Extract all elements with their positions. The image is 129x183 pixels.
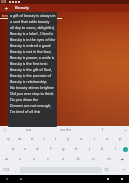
button[interactable]: c — [41, 154, 56, 164]
staticText: Beauty — [15, 5, 29, 11]
staticText: g — [62, 146, 65, 152]
staticText: Dreams are not enough; No matter what... — [10, 103, 56, 108]
button[interactable]: o — [101, 134, 114, 144]
staticText: a soul that adds beauty that sometimes..… — [10, 19, 56, 24]
button[interactable]: Beauty is the gift of God, and the most.… — [8, 66, 57, 72]
staticText: Beauty is in the eyes of the beholder — [10, 37, 56, 42]
staticText: h — [75, 146, 78, 152]
button[interactable]: r — [38, 134, 50, 144]
button[interactable]: Navigate up — [0, 4, 12, 12]
button[interactable]: Beauty is a label - I lived a legacy — [8, 30, 57, 36]
button[interactable]: e — [26, 134, 38, 144]
button[interactable]: beautiful — [0, 12, 129, 20]
staticText: Beauty is the first test: there is no pl… — [10, 61, 56, 66]
staticText: v — [62, 156, 65, 162]
button[interactable]: z — [13, 154, 27, 164]
staticText: m — [107, 156, 111, 162]
button[interactable]: p — [114, 134, 127, 144]
button[interactable]: a soul that adds beauty that sometimes..… — [8, 18, 57, 24]
staticText: I'm tired of all this nonsense about bea… — [10, 109, 56, 114]
staticText: Beauty is the gift of God, and the most.… — [10, 67, 56, 72]
button[interactable]: b — [71, 154, 86, 164]
button[interactable]: Menu — [118, 175, 126, 183]
button[interactable]: Emoji — [102, 164, 111, 175]
staticText: use the — [60, 128, 72, 132]
button[interactable]: g — [57, 144, 70, 154]
button[interactable]: m — [101, 154, 116, 164]
button[interactable]: Enter — [119, 164, 129, 175]
button[interactable]: Beauty is not in the face; beauty is a l… — [8, 48, 57, 54]
staticText: all day to come, delightful, and, wisdom… — [10, 25, 56, 30]
button[interactable]: but — [10, 126, 47, 134]
button[interactable]: q — [2, 134, 14, 144]
button[interactable]: n — [86, 154, 101, 164]
staticText: x — [33, 156, 36, 162]
button[interactable]: y — [62, 134, 75, 144]
button[interactable]: h — [70, 144, 83, 154]
staticText: but — [26, 128, 32, 132]
button[interactable]: Beauty is in the eyes of the beholder — [8, 36, 57, 42]
button[interactable]: Dreams are not enough; No matter what... — [8, 102, 57, 108]
button[interactable]: Comma — [12, 164, 20, 175]
staticText: f — [50, 146, 52, 152]
staticText: n — [92, 156, 95, 162]
staticText: No beauty shines brighter than that of a… — [10, 85, 56, 90]
staticText: w — [18, 136, 22, 142]
button[interactable]: v — [56, 154, 71, 164]
button[interactable]: k — [96, 144, 109, 154]
button[interactable]: Beauty is the promise of happiness. — [8, 72, 57, 78]
button[interactable]: Keyboard menu — [0, 126, 10, 134]
staticText: k — [101, 146, 104, 152]
button[interactable]: Beauty is relationship; there is always.… — [8, 78, 57, 84]
button[interactable]: use the — [47, 126, 84, 134]
button[interactable]: u — [75, 134, 88, 144]
button[interactable]: I — [84, 126, 121, 134]
staticText: Beauty is the promise of happiness. — [10, 73, 56, 78]
button[interactable]: Beauty is power; a smile is its sword — [8, 54, 57, 60]
button[interactable]: I'm tired of all this nonsense about bea… — [8, 108, 57, 114]
button[interactable]: Overview — [104, 175, 112, 183]
button[interactable]: Search — [122, 144, 129, 154]
button[interactable]: Symbols — [0, 164, 12, 175]
button[interactable]: all day to come, delightful, and, wisdom… — [8, 24, 57, 30]
staticText: Beauty is a label - I lived a legacy — [10, 31, 56, 36]
staticText: q — [7, 136, 10, 142]
staticText: . — [114, 167, 116, 172]
button[interactable]: No beauty shines brighter than that of a… — [8, 84, 57, 90]
button[interactable]: t — [50, 134, 62, 144]
button[interactable]: More suggestions — [121, 126, 129, 134]
staticText: j — [89, 146, 91, 152]
button[interactable]: w — [14, 134, 26, 144]
button[interactable]: f — [44, 144, 57, 154]
button[interactable]: i — [88, 134, 101, 144]
button[interactable]: l — [109, 144, 122, 154]
staticText: a gift of beauty is always in the mouth.… — [10, 13, 56, 18]
button[interactable]: a gift of beauty is always in the mouth.… — [8, 12, 57, 18]
staticText: p — [119, 136, 122, 142]
button[interactable]: Beauty is indeed a good gift of God; but… — [8, 42, 57, 48]
button[interactable]: Shift — [0, 154, 13, 164]
staticText: e — [31, 136, 34, 142]
staticText: Do you show the difference between a... — [10, 97, 56, 102]
staticText: ?123 — [3, 168, 10, 172]
staticText: s — [24, 146, 27, 152]
button[interactable]: d — [31, 144, 44, 154]
button[interactable]: Do you show the difference between a... — [8, 96, 57, 102]
button[interactable]: s — [19, 144, 31, 154]
staticText: ↵ — [123, 168, 126, 172]
staticText: Did you ever stop to think a bird's face… — [10, 91, 56, 96]
button[interactable]: Back — [3, 175, 11, 183]
staticText: Beauty is power; a smile is its sword — [10, 55, 56, 60]
staticText: r — [43, 136, 45, 142]
button[interactable]: x — [27, 154, 41, 164]
button[interactable]: j — [83, 144, 96, 154]
button[interactable]: Home — [17, 175, 25, 183]
button[interactable]: Did you ever stop to think a bird's face… — [8, 90, 57, 96]
button[interactable]: Beauty is the first test: there is no pl… — [8, 60, 57, 66]
staticText: , — [15, 167, 17, 172]
button[interactable]: Delete — [116, 154, 129, 164]
button[interactable]: a — [7, 144, 19, 154]
staticText: Beauty is indeed a good gift of God; but… — [10, 43, 56, 48]
